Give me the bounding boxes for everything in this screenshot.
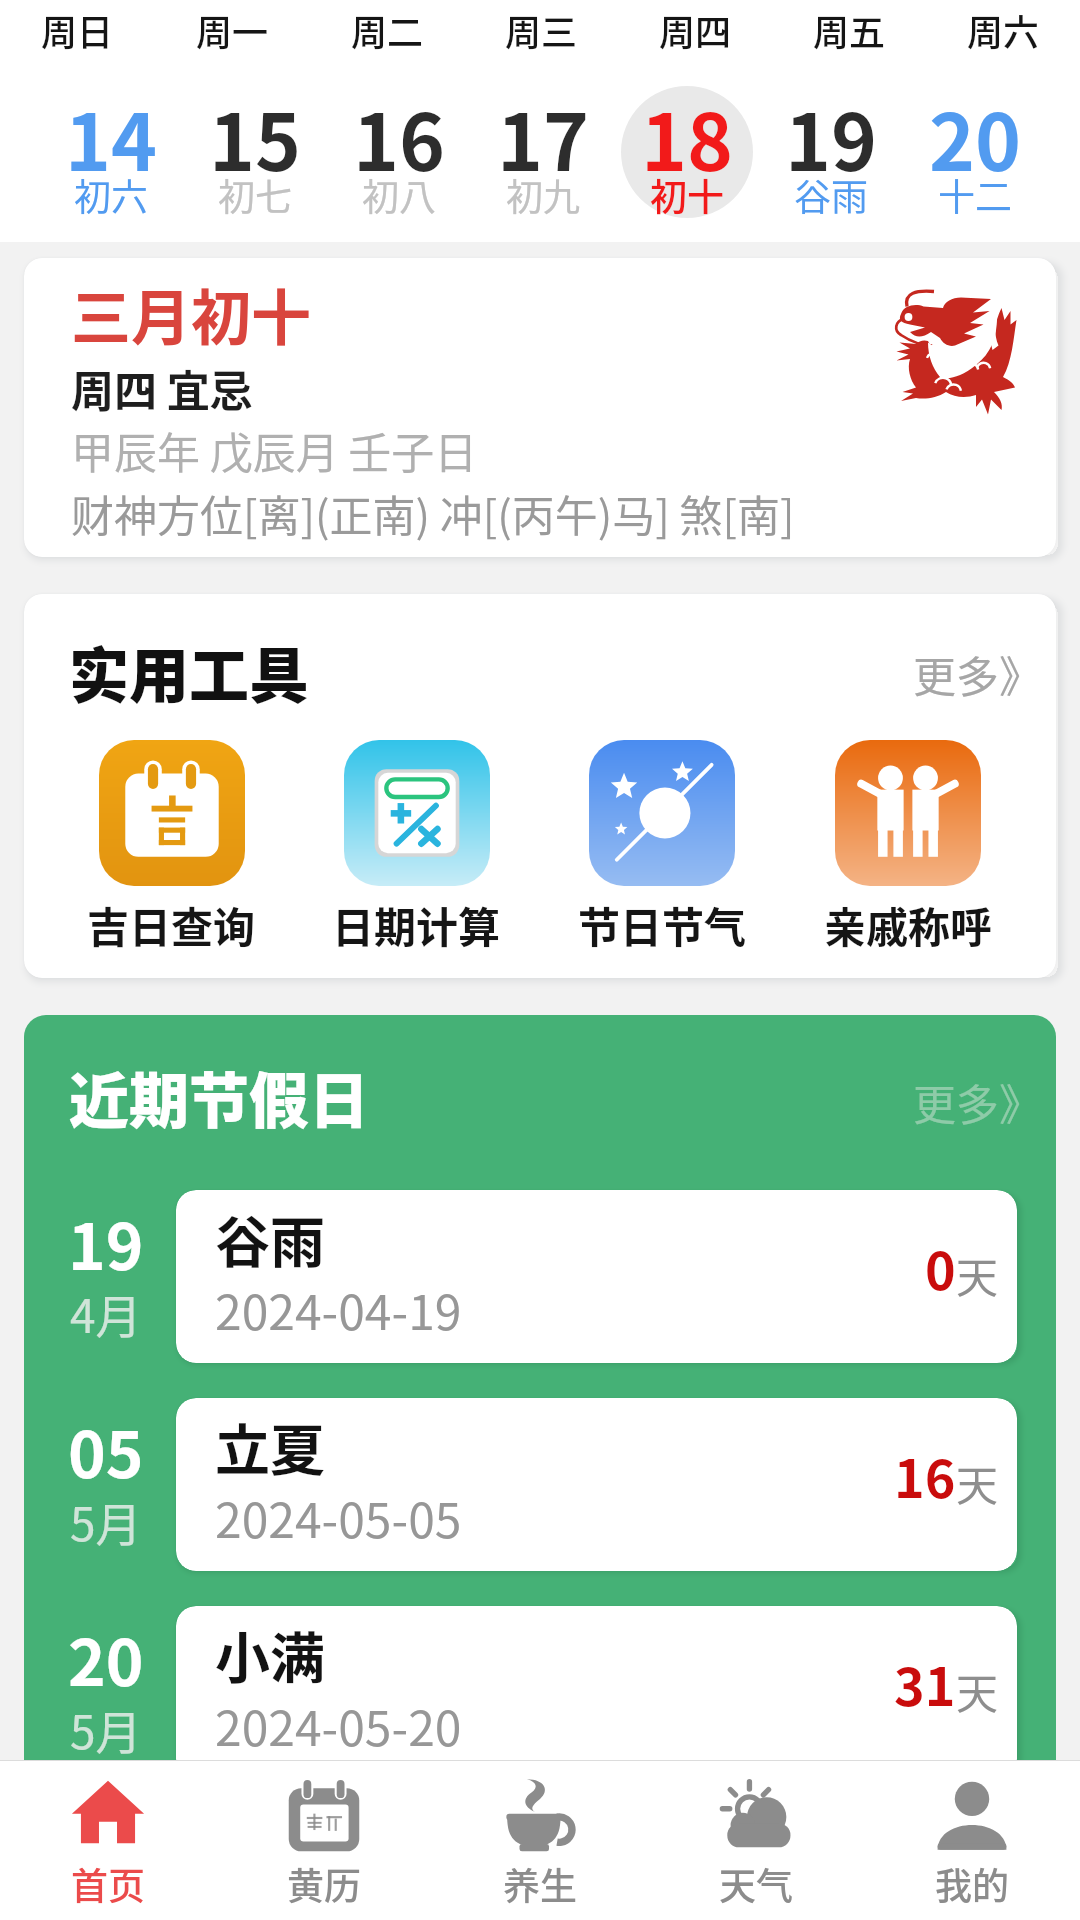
staticText: 我的 xyxy=(935,1857,1009,1911)
button[interactable]: 20 xyxy=(903,86,1047,236)
button[interactable]: 19 xyxy=(24,1190,1056,1363)
staticText: 十二 xyxy=(938,168,1012,222)
button[interactable]: 17 xyxy=(471,86,615,236)
staticText: 天 xyxy=(956,1452,999,1513)
staticText: 31 xyxy=(894,1646,956,1721)
button[interactable]: 更多》 xyxy=(913,639,1042,705)
staticText: 日期计算 xyxy=(332,894,501,955)
staticText: 周三 xyxy=(505,4,578,56)
staticText: 周六 xyxy=(967,4,1040,56)
staticText: 天 xyxy=(956,1660,999,1721)
staticText: 初十 xyxy=(650,168,724,222)
button[interactable]: 日期计算 xyxy=(294,740,539,955)
staticText: 谷雨 xyxy=(215,1198,326,1278)
staticText: 初八 xyxy=(362,168,436,222)
staticText: 更多》 xyxy=(913,1071,1042,1133)
button[interactable]: 吉日查询 xyxy=(49,740,294,955)
staticText: 周五 xyxy=(813,4,886,56)
staticText: 05 xyxy=(68,1404,144,1497)
staticText: 5月 xyxy=(70,1488,142,1555)
button[interactable]: 14 xyxy=(39,86,183,236)
staticText: 周一 xyxy=(196,4,269,56)
staticText: 更多》 xyxy=(913,643,1042,705)
staticText: 2024-04-19 xyxy=(215,1274,462,1344)
button[interactable]: 黄历 xyxy=(216,1761,432,1920)
staticText: 吉日查询 xyxy=(87,894,256,955)
button[interactable]: 三月初十 xyxy=(24,258,1056,557)
button[interactable]: 养生 xyxy=(432,1761,648,1920)
staticText: 19 xyxy=(68,1196,144,1289)
button[interactable]: 15 xyxy=(183,86,327,236)
staticText: 2024-05-05 xyxy=(215,1482,462,1552)
staticText: 周四 宜忌 xyxy=(71,357,253,419)
staticText: 三月初十 xyxy=(71,270,311,357)
button[interactable]: 亲戚称呼 xyxy=(785,740,1031,955)
staticText: 养生 xyxy=(503,1857,577,1911)
staticText: 近期节假日 xyxy=(69,1053,369,1140)
button[interactable]: 更多》 xyxy=(913,1061,1042,1133)
staticText: 0 xyxy=(925,1230,956,1305)
staticText: 初九 xyxy=(506,168,580,222)
staticText: 周二 xyxy=(351,4,424,56)
staticText: 20 xyxy=(929,81,1022,194)
button[interactable]: 首页 xyxy=(0,1761,216,1920)
staticText: 初七 xyxy=(218,168,292,222)
button[interactable]: 天气 xyxy=(648,1761,864,1920)
button[interactable]: 16 xyxy=(327,86,471,236)
staticText: 财神方位[离](正南) 冲[(丙午)马] 煞[南] xyxy=(71,482,795,544)
button[interactable]: 18 xyxy=(615,86,759,236)
staticText: 14 xyxy=(65,81,158,194)
staticText: 甲辰年 戊辰月 壬子日 xyxy=(71,419,478,481)
button[interactable]: 我的 xyxy=(864,1761,1080,1920)
staticText: 2024-05-20 xyxy=(215,1690,462,1760)
staticText: 周日 xyxy=(41,4,114,56)
staticText: 黄历 xyxy=(287,1857,361,1911)
staticText: 20 xyxy=(68,1612,144,1705)
button[interactable]: 19 xyxy=(759,86,903,236)
staticText: 周四 xyxy=(659,4,732,56)
staticText: 19 xyxy=(785,81,878,194)
button[interactable]: 05 xyxy=(24,1398,1056,1571)
staticText: 实用工具 xyxy=(69,628,309,715)
staticText: 18 xyxy=(641,81,734,194)
staticText: 节日节气 xyxy=(578,894,747,955)
staticText: 天 xyxy=(956,1244,999,1305)
staticText: 16 xyxy=(353,81,446,194)
staticText: 天气 xyxy=(719,1857,793,1911)
button[interactable]: 节日节气 xyxy=(539,740,785,955)
staticText: 5月 xyxy=(70,1696,142,1763)
staticText: 立夏 xyxy=(215,1406,326,1486)
staticText: 16 xyxy=(894,1438,956,1513)
button[interactable]: 20 xyxy=(24,1606,1056,1779)
staticText: 初六 xyxy=(74,168,148,222)
staticText: 17 xyxy=(497,81,590,194)
staticText: 首页 xyxy=(71,1857,145,1911)
staticText: 小满 xyxy=(215,1614,326,1694)
staticText: 亲戚称呼 xyxy=(824,894,993,955)
staticText: 4月 xyxy=(70,1280,142,1347)
staticText: 15 xyxy=(209,81,302,194)
staticText: 谷雨 xyxy=(794,168,868,222)
